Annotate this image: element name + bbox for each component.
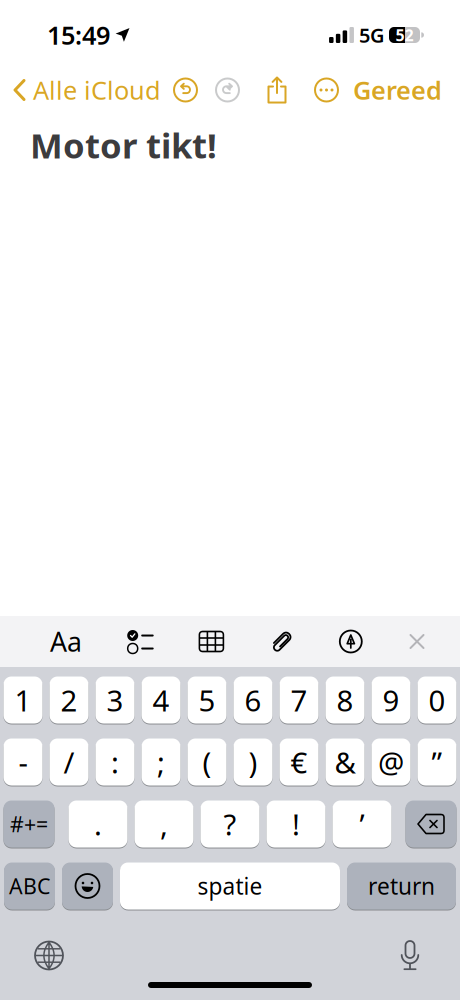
staticText: spatie <box>197 871 262 901</box>
staticText: 6 <box>244 680 261 719</box>
button[interactable]: ABC <box>4 862 55 910</box>
button[interactable]: Checklist <box>127 629 153 653</box>
button[interactable]: @ <box>371 738 410 786</box>
button[interactable]: ( <box>187 738 226 786</box>
staticText: ! <box>292 804 300 843</box>
staticText: return <box>368 871 435 901</box>
staticText: ? <box>223 804 236 843</box>
staticText: 5 <box>198 680 215 719</box>
button[interactable]: return <box>347 862 456 910</box>
button[interactable]: Emoji <box>62 862 113 910</box>
button[interactable]: Close <box>408 632 426 650</box>
staticText: ( <box>202 742 211 781</box>
button[interactable]: 9 <box>371 676 410 724</box>
staticText: 7 <box>290 680 307 719</box>
button[interactable]: 5 <box>187 676 226 724</box>
button[interactable]: Delete <box>405 800 456 848</box>
staticText: ; <box>157 742 165 781</box>
button[interactable]: 1 <box>3 676 42 724</box>
button[interactable]: : <box>95 738 134 786</box>
staticText: ” <box>431 742 442 781</box>
staticText: Aa <box>50 624 82 659</box>
button[interactable]: 6 <box>233 676 272 724</box>
staticText: Motor tikt! <box>30 122 217 168</box>
button[interactable]: Undo <box>173 77 198 102</box>
button[interactable]: & <box>325 738 364 786</box>
staticText: 4 <box>152 680 169 719</box>
button[interactable]: 2 <box>49 676 88 724</box>
button[interactable]: Format <box>50 624 82 659</box>
staticText: & <box>334 742 355 781</box>
staticText: #+= <box>10 810 48 838</box>
button[interactable]: ’ <box>332 800 391 848</box>
staticText: , <box>160 804 168 843</box>
button[interactable]: #+= <box>3 800 54 848</box>
button[interactable]: ! <box>266 800 325 848</box>
staticText: @ <box>378 742 404 781</box>
button[interactable]: 3 <box>95 676 134 724</box>
button[interactable]: Attach <box>270 628 294 654</box>
staticText: € <box>290 742 307 781</box>
button[interactable]: 0 <box>417 676 456 724</box>
button[interactable]: ) <box>233 738 272 786</box>
button[interactable]: Redo <box>215 77 240 102</box>
button[interactable]: Markup <box>339 629 363 653</box>
staticText: ) <box>248 742 257 781</box>
staticText: Alle iCloud <box>33 73 161 107</box>
staticText: 3 <box>106 680 123 719</box>
button[interactable]: - <box>3 738 42 786</box>
button[interactable]: Next keyboard <box>34 940 64 970</box>
staticText: 5G <box>359 22 385 48</box>
staticText: - <box>18 742 27 781</box>
button[interactable]: Back <box>0 73 161 107</box>
button[interactable]: Table <box>198 630 224 652</box>
staticText: 8 <box>336 680 353 719</box>
button[interactable]: ? <box>200 800 259 848</box>
staticText: ABC <box>9 872 50 900</box>
button[interactable]: More <box>314 77 339 102</box>
button[interactable]: Share <box>266 76 288 104</box>
button[interactable]: € <box>279 738 318 786</box>
staticText: 15:49 <box>47 18 110 52</box>
staticText: : <box>111 742 119 781</box>
staticText: Gereed <box>353 73 442 107</box>
button[interactable]: 8 <box>325 676 364 724</box>
button[interactable]: 7 <box>279 676 318 724</box>
button[interactable]: / <box>49 738 88 786</box>
staticText: . <box>94 804 102 843</box>
button[interactable]: spatie <box>120 862 340 910</box>
button[interactable]: Gereed <box>353 73 460 107</box>
button[interactable]: . <box>68 800 127 848</box>
button[interactable]: ; <box>141 738 180 786</box>
staticText: / <box>63 742 74 781</box>
staticText: 1 <box>14 680 31 719</box>
button[interactable]: 4 <box>141 676 180 724</box>
staticText: 2 <box>60 680 77 719</box>
staticText: 9 <box>382 680 399 719</box>
button[interactable]: ” <box>417 738 456 786</box>
staticText: 52 <box>395 24 413 46</box>
staticText: 0 <box>428 680 445 719</box>
staticText: ’ <box>359 804 364 843</box>
button[interactable]: Dictate <box>400 940 420 971</box>
button[interactable]: , <box>134 800 193 848</box>
